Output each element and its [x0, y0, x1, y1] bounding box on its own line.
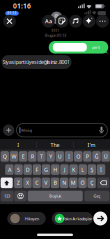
staticText: U [58, 153, 62, 160]
staticText: R [31, 153, 34, 160]
staticText: Aa [45, 18, 52, 25]
staticText: The [50, 141, 59, 148]
staticText: Y [49, 153, 52, 160]
staticText: Hikayen [25, 216, 39, 221]
staticText: 8001 [51, 29, 59, 32]
button[interactable]: Text [42, 15, 55, 28]
staticText: O [76, 153, 80, 160]
staticText: W [11, 153, 16, 160]
staticText: Ü [104, 153, 108, 160]
staticText: Ğ [94, 153, 98, 160]
staticText: Ş [90, 166, 93, 173]
staticText: M [71, 179, 76, 186]
button[interactable]: Stickers [56, 15, 68, 28]
staticText: B [53, 179, 56, 186]
staticText: I [68, 153, 70, 160]
staticText: D [26, 166, 30, 173]
staticText: İ [100, 166, 102, 173]
staticText: L [81, 166, 84, 173]
staticText: I'm [88, 141, 96, 148]
staticText: F [35, 166, 38, 173]
button[interactable]: Yakın Arkadaşlar [52, 212, 93, 225]
staticText: A [8, 166, 11, 173]
button[interactable]: Effects [83, 15, 95, 28]
staticText: P [86, 153, 89, 160]
staticText: N [62, 179, 66, 186]
staticText: S [17, 166, 20, 173]
staticText: T [40, 153, 43, 160]
button[interactable]: Music [69, 15, 82, 28]
button[interactable]: Hikayen [7, 212, 46, 225]
staticText: Bugün 01:13 [45, 32, 66, 38]
staticText: Ç [90, 179, 93, 186]
staticText: 01:13 [7, 11, 16, 15]
button[interactable]: Share [93, 211, 107, 225]
staticText: 01:16 [13, 1, 31, 10]
staticText: Geç [93, 193, 100, 199]
staticText: H [53, 166, 57, 173]
button[interactable]: More [96, 15, 109, 28]
staticText: C [35, 179, 38, 186]
staticText: Siyasi parti üyesi değilsiniz. 8001 [3, 58, 70, 66]
staticText: J [64, 166, 65, 173]
staticText: Ö [80, 179, 84, 186]
staticText: Yakın Arkadaşlar [63, 216, 93, 221]
staticText: K [72, 166, 75, 173]
staticText: V [44, 179, 47, 186]
button[interactable]: Close [3, 15, 16, 28]
staticText: E [22, 153, 25, 160]
staticText: parti [92, 45, 100, 50]
staticText: G [44, 166, 48, 173]
staticText: X [26, 179, 29, 186]
staticText: 123 [4, 193, 10, 199]
staticText: Mesaj [21, 128, 32, 133]
staticText: I [17, 141, 19, 148]
staticText: Q [3, 153, 7, 160]
staticText: Boşluk [49, 193, 61, 199]
staticText: Z [17, 179, 20, 186]
